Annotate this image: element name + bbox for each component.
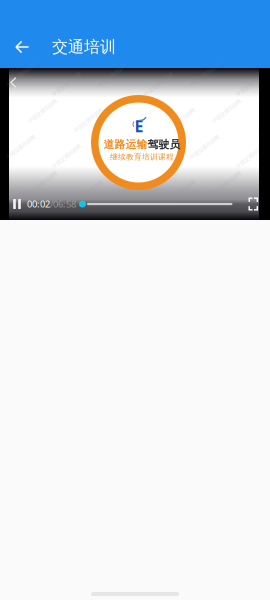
button[interactable]: Back (0, 31, 52, 63)
staticText: 中国交通培训网 (71, 189, 106, 196)
staticText: 中国交通培训网 (141, 153, 176, 160)
staticText: 中国交通培训网 (25, 180, 60, 187)
button[interactable]: Full screen (232, 196, 258, 212)
staticText: 中国交通培训网 (209, 180, 244, 187)
staticText: 中国交通培训网 (3, 144, 38, 151)
staticText: 中国交通培训网 (163, 117, 198, 124)
staticText: 中国交通培训网 (187, 72, 222, 79)
staticText: 道路运输 (103, 138, 147, 151)
staticText: 中国交通培训网 (95, 72, 130, 79)
staticText: 中国交通培训网 (117, 108, 152, 115)
staticText: 驾驶员 (147, 138, 180, 151)
staticText: 中国交通培训网 (255, 117, 270, 124)
button[interactable]: Pause (10, 196, 24, 212)
staticText: E (134, 115, 143, 137)
staticText: 中国交通培训网 (233, 153, 268, 160)
staticText: 中国交通培训网 (49, 81, 84, 88)
staticText: 中国交通培训网 (163, 189, 198, 196)
staticText: 中国交通培训网 (95, 144, 130, 151)
staticText: 中国交通培训网 (25, 108, 60, 115)
staticText: 中国交通培训网 (71, 117, 106, 124)
staticText: 00:02 (27, 198, 50, 210)
staticText: 中国交通培训网 (187, 144, 222, 151)
staticText: /06:58 (50, 198, 76, 210)
staticText: 继续教育培训课程 (110, 152, 174, 162)
staticText: 中国交通培训网 (49, 153, 84, 160)
staticText: 中国交通培训网 (209, 108, 244, 115)
staticText: 中国交通培训网 (141, 81, 176, 88)
staticText: 中国交通培训网 (3, 72, 38, 79)
staticText: 中国交通培训网 (255, 189, 270, 196)
staticText: 中国交通培训网 (117, 180, 152, 187)
staticText: 中国交通培训网 (233, 81, 268, 88)
button[interactable]: Back (0, 73, 25, 92)
staticText: 交通培训 (52, 37, 116, 57)
button[interactable]: 交通培训 (52, 31, 124, 63)
